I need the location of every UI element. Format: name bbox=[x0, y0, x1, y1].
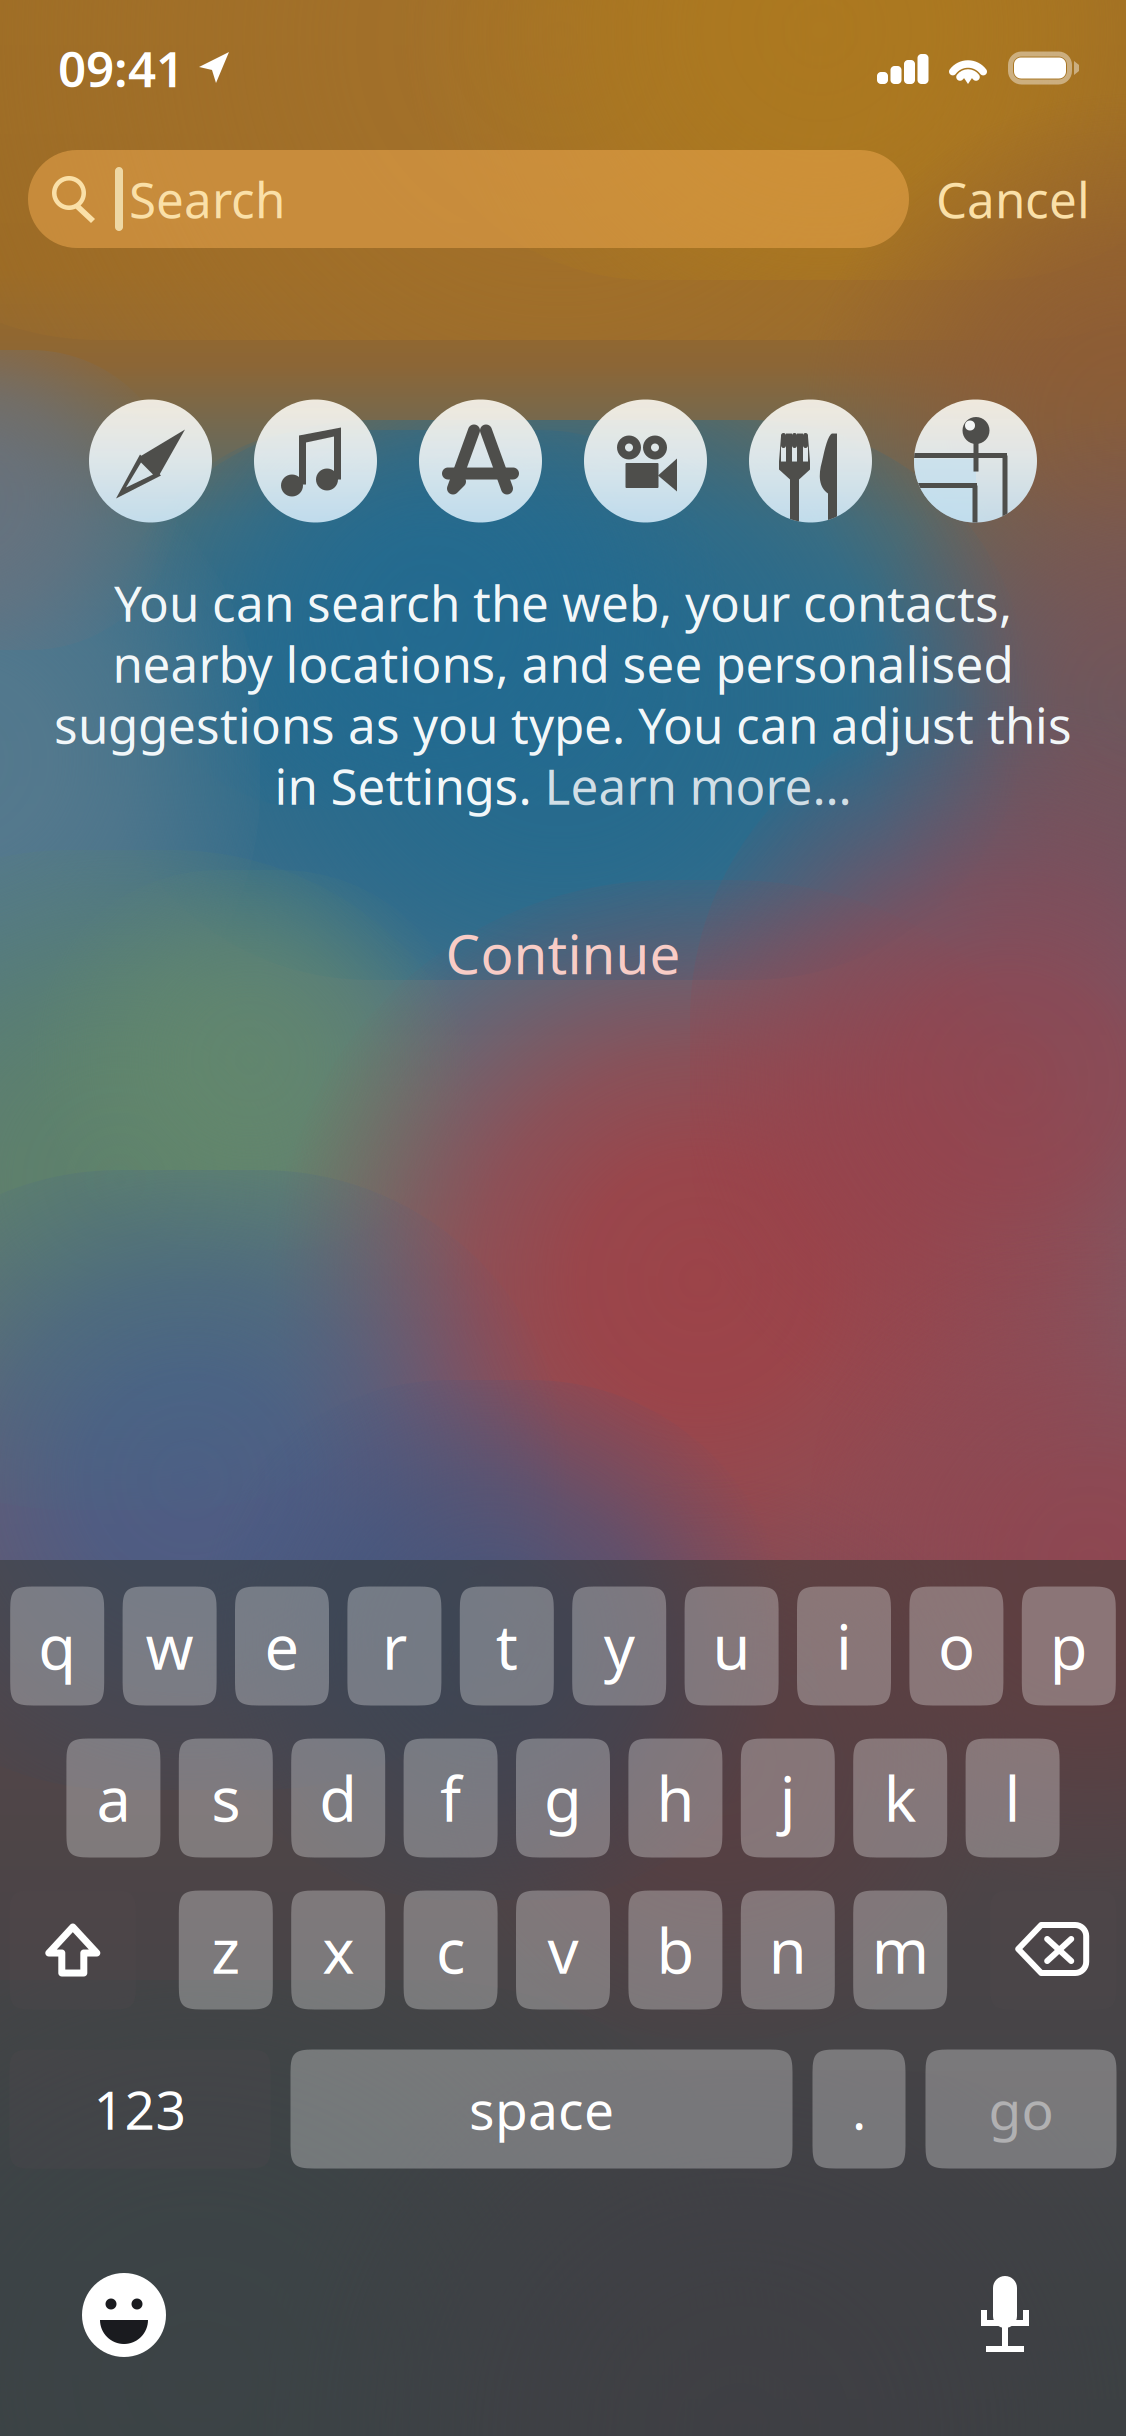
staticText: a bbox=[96, 1757, 130, 1839]
button[interactable]: j bbox=[741, 1738, 835, 1857]
button[interactable]: Music bbox=[254, 399, 377, 522]
staticText: nearby locations, and see personalised bbox=[112, 631, 1013, 696]
button[interactable]: m bbox=[853, 1890, 947, 2009]
button[interactable]: g bbox=[516, 1738, 610, 1857]
button[interactable]: r bbox=[347, 1586, 441, 1705]
staticText: q bbox=[38, 1605, 76, 1687]
button[interactable]: o bbox=[909, 1586, 1003, 1705]
staticText: Continue bbox=[445, 917, 680, 989]
staticText: w bbox=[146, 1605, 194, 1687]
button[interactable]: q bbox=[10, 1586, 104, 1705]
button[interactable]: y bbox=[572, 1586, 666, 1705]
button[interactable]: p bbox=[1022, 1586, 1116, 1705]
button[interactable]: Video bbox=[584, 399, 707, 522]
button[interactable]: Safari bbox=[89, 399, 212, 522]
staticText: space bbox=[469, 2074, 614, 2144]
staticText: suggestions as you type. You can adjust … bbox=[54, 692, 1072, 757]
staticText: . bbox=[852, 2074, 866, 2144]
staticText: k bbox=[884, 1757, 917, 1839]
button[interactable]: space bbox=[290, 2049, 792, 2168]
staticText: r bbox=[382, 1605, 407, 1687]
button[interactable]: Delete bbox=[990, 1890, 1116, 2009]
staticText: Learn more... bbox=[544, 753, 851, 818]
button[interactable]: v bbox=[516, 1890, 610, 2009]
button[interactable]: c bbox=[404, 1890, 498, 2009]
button[interactable]: Restaurants bbox=[749, 399, 872, 522]
staticText: h bbox=[656, 1757, 694, 1839]
button[interactable]: e bbox=[235, 1586, 329, 1705]
button[interactable]: Continue bbox=[403, 917, 723, 989]
button[interactable]: w bbox=[123, 1586, 217, 1705]
staticText: Cancel bbox=[936, 166, 1090, 232]
button[interactable]: h bbox=[628, 1738, 722, 1857]
staticText: z bbox=[211, 1909, 240, 1991]
button[interactable]: s bbox=[179, 1738, 273, 1857]
button[interactable]: i bbox=[797, 1586, 891, 1705]
button[interactable]: Search bbox=[28, 150, 909, 248]
button[interactable]: App Store bbox=[419, 399, 542, 522]
staticText: i bbox=[836, 1605, 852, 1687]
button[interactable]: k bbox=[853, 1738, 947, 1857]
staticText: j bbox=[780, 1757, 796, 1839]
staticText: s bbox=[211, 1757, 240, 1839]
button[interactable]: z bbox=[179, 1890, 273, 2009]
staticText: l bbox=[1005, 1757, 1021, 1839]
staticText: e bbox=[264, 1605, 299, 1687]
button[interactable]: Dictation bbox=[975, 2272, 1035, 2358]
staticText: in Settings. bbox=[274, 753, 531, 818]
button[interactable]: Cancel bbox=[928, 150, 1098, 248]
staticText: t bbox=[496, 1605, 518, 1687]
button[interactable]: Maps bbox=[914, 399, 1037, 522]
staticText: p bbox=[1050, 1605, 1088, 1687]
staticText: f bbox=[440, 1757, 461, 1839]
staticText: u bbox=[713, 1605, 751, 1687]
button[interactable]: f bbox=[404, 1738, 498, 1857]
button[interactable]: l bbox=[966, 1738, 1060, 1857]
button[interactable]: t bbox=[460, 1586, 554, 1705]
staticText: y bbox=[604, 1605, 635, 1687]
staticText: c bbox=[436, 1909, 465, 1991]
button[interactable]: 123 bbox=[9, 2049, 270, 2168]
button[interactable]: b bbox=[628, 1890, 722, 2009]
button[interactable]: . bbox=[812, 2049, 905, 2168]
staticText: go bbox=[988, 2074, 1053, 2144]
staticText: n bbox=[769, 1909, 807, 1991]
staticText: b bbox=[656, 1909, 694, 1991]
button[interactable]: u bbox=[685, 1586, 779, 1705]
staticText: Search bbox=[129, 166, 285, 232]
staticText: d bbox=[319, 1757, 357, 1839]
staticText: 123 bbox=[93, 2074, 186, 2144]
button[interactable]: Shift bbox=[10, 1890, 136, 2009]
staticText: You can search the web, your contacts, bbox=[114, 570, 1012, 635]
button[interactable]: go bbox=[925, 2049, 1116, 2168]
staticText: o bbox=[938, 1605, 975, 1687]
button[interactable]: a bbox=[66, 1738, 160, 1857]
staticText: m bbox=[872, 1909, 929, 1991]
button[interactable]: Emoji keyboard bbox=[82, 2273, 166, 2357]
staticText: v bbox=[547, 1909, 578, 1991]
button[interactable]: x bbox=[291, 1890, 385, 2009]
button[interactable]: n bbox=[741, 1890, 835, 2009]
staticText: x bbox=[322, 1909, 354, 1991]
staticText: g bbox=[544, 1757, 582, 1839]
staticText: 09:41 bbox=[58, 35, 184, 101]
button[interactable]: d bbox=[291, 1738, 385, 1857]
